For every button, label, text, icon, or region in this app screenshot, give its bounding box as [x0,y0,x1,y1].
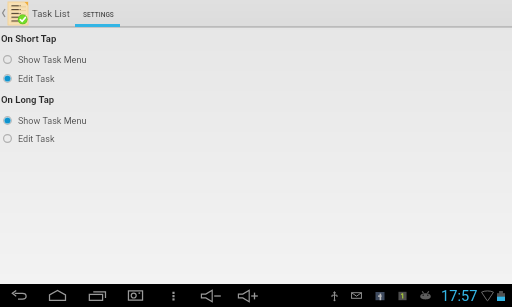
staticText: Show Task Menu [18,116,87,127]
staticText: Show Task Menu [18,55,87,66]
button[interactable]: Show Task Menu [0,50,512,69]
staticText: SETTINGS [83,11,114,19]
button[interactable]: SETTINGS [75,0,120,27]
button[interactable]: Back [4,284,34,307]
button[interactable]: Show Task Menu [0,111,512,130]
staticText: On Long Tap [1,94,55,105]
staticText: Task List [32,8,70,19]
button[interactable]: Edit Task [0,129,512,148]
staticText: Edit Task [18,74,55,85]
staticText: On Short Tap [1,33,57,44]
button[interactable]: Volume up [233,284,263,307]
button[interactable]: Navigate up [0,0,8,26]
button[interactable]: Volume down [196,284,226,307]
button[interactable]: Edit Task [0,69,512,88]
staticText: Edit Task [18,134,55,145]
staticText: 17:57 [441,287,478,304]
button[interactable]: Screenshot [120,284,150,307]
button[interactable]: Menu [158,284,188,307]
button[interactable]: Home [42,284,72,307]
button[interactable]: Recent apps [82,284,112,307]
